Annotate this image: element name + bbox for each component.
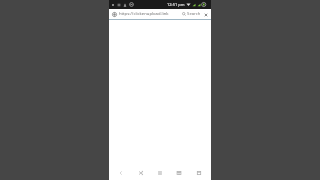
- button[interactable]: Tabs: [192, 166, 206, 180]
- staticText: 12:51 pm: [167, 2, 185, 7]
- button[interactable]: Search: [181, 9, 202, 19]
- button[interactable]: https://clickenupload.link: [119, 9, 181, 19]
- button[interactable]: Menu: [153, 166, 167, 180]
- button[interactable]: Stop loading: [202, 11, 209, 18]
- staticText: Search: [186, 11, 201, 17]
- button[interactable]: Site information: [111, 11, 117, 17]
- staticText: https://clickenupload.link: [119, 11, 169, 17]
- button[interactable]: Back: [114, 166, 128, 180]
- button[interactable]: Shuffle: [134, 166, 148, 180]
- button[interactable]: Saved pages: [172, 166, 186, 180]
